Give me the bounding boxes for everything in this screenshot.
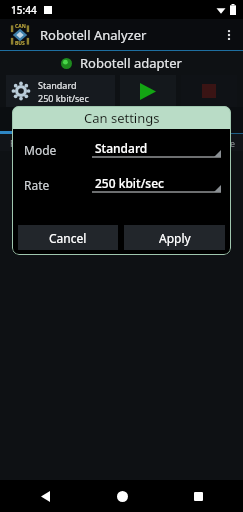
button[interactable]: Cancel [18,225,118,250]
staticText: Rate [24,177,92,193]
staticText: Data [91,137,111,149]
staticText: Cancel [49,230,87,246]
staticText: CAN [15,23,26,30]
staticText: Mode [24,142,92,158]
staticText: Standard [95,140,148,156]
staticText: Robotell Analyzer [40,26,147,44]
staticText: Standard [38,79,77,91]
staticText: 15:44 [11,3,37,17]
button[interactable]: Stop [181,75,237,107]
staticText: 250 kbit/sec [38,92,89,104]
staticText: 250 kbit/sec [95,175,164,191]
button[interactable]: Apply [124,225,225,250]
staticText: FrameId [10,137,46,149]
staticText: Cycle [213,137,235,149]
staticText: Apply [159,230,191,246]
button[interactable]: Standard [6,75,115,107]
staticText: BUS [15,40,25,47]
button[interactable]: Start [120,75,176,107]
button[interactable]: LOG [163,107,243,131]
button[interactable]: TABLE [0,107,81,131]
button[interactable]: More options [215,21,243,49]
button[interactable]: Standard [92,137,221,162]
staticText: TRACE [108,113,136,125]
button[interactable]: TRACE [82,107,162,131]
button[interactable]: Recent apps [185,483,211,509]
staticText: Can settings [84,109,160,127]
button[interactable]: 250 kbit/sec [92,172,221,197]
staticText: Robotell adapter [80,54,182,72]
button[interactable]: Home [109,483,135,509]
button[interactable]: Back [32,483,58,509]
